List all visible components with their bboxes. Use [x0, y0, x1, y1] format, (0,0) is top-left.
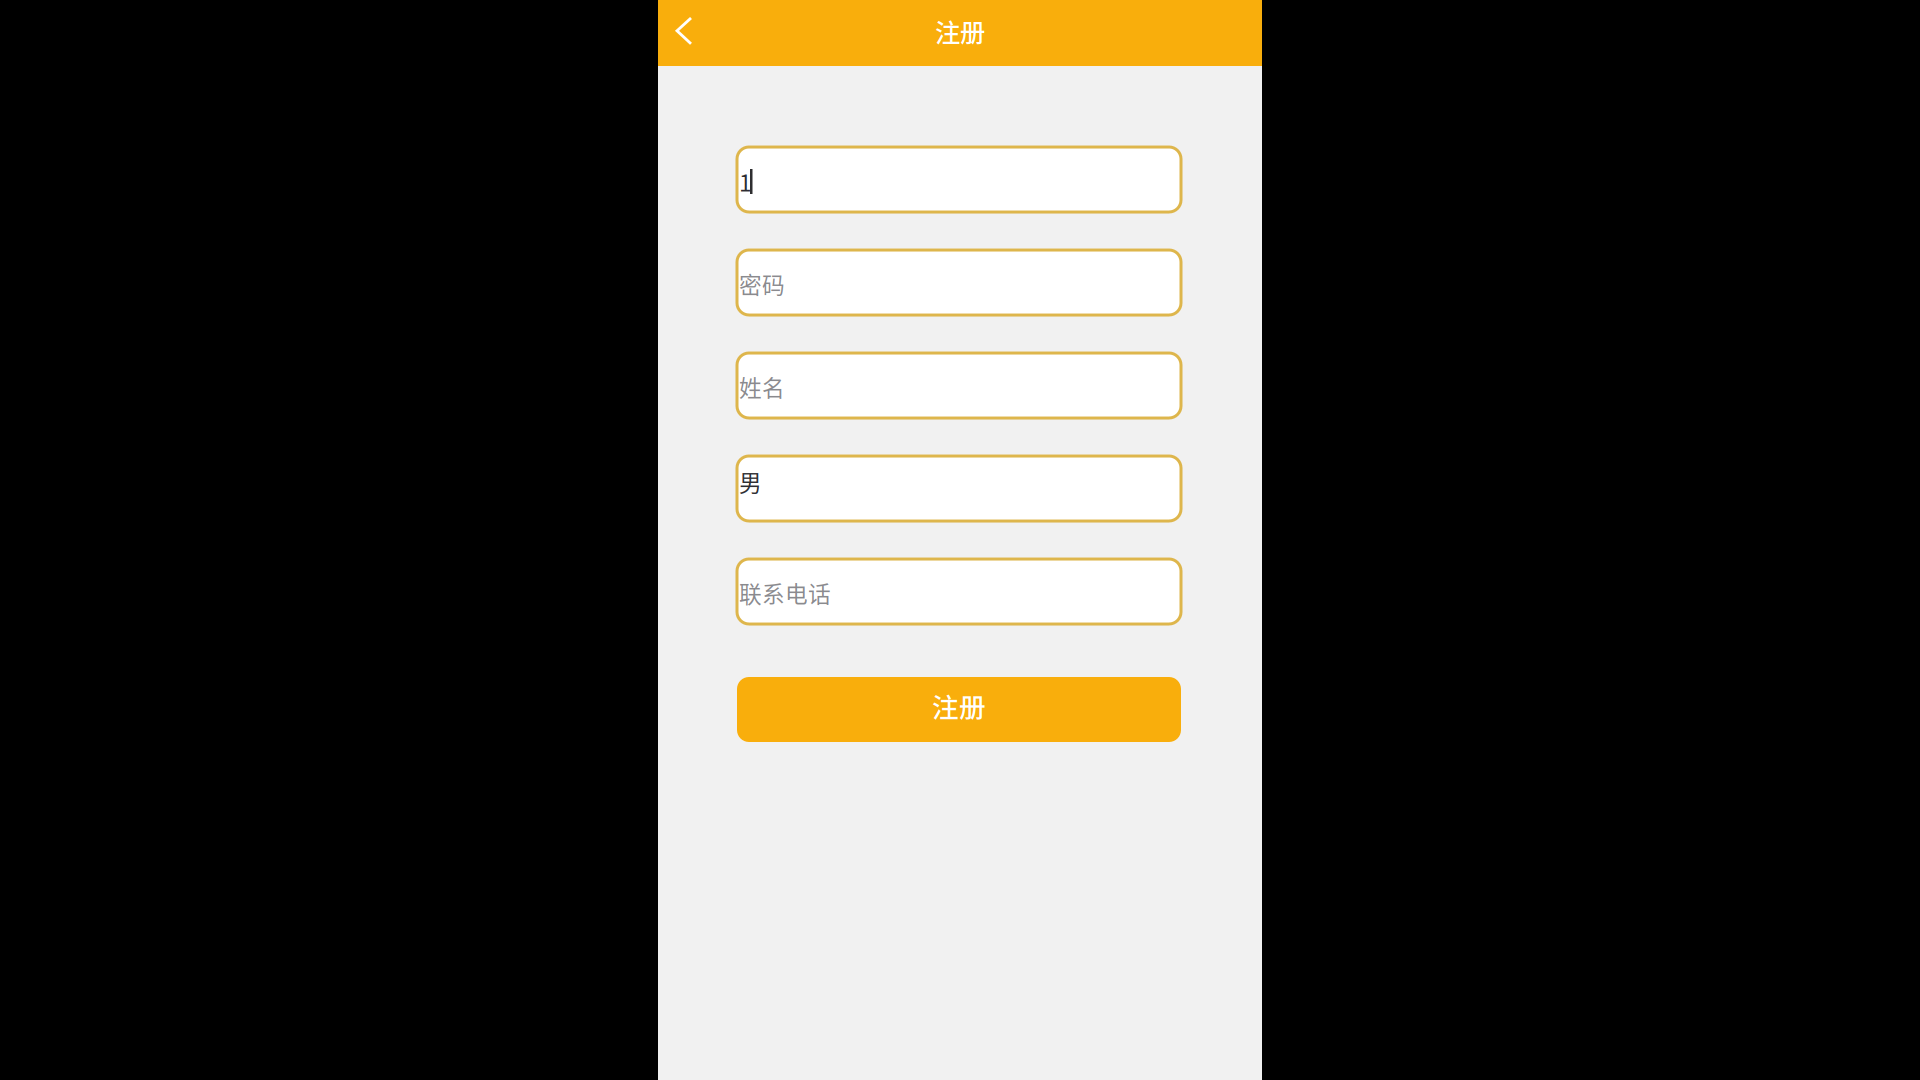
- staticText: 注册: [935, 13, 985, 49]
- staticText: 姓名: [739, 370, 785, 403]
- button[interactable]: 1: [737, 147, 1181, 212]
- button[interactable]: 姓名: [737, 353, 1181, 418]
- button[interactable]: 注册: [737, 677, 1181, 742]
- staticText: 密码: [739, 267, 785, 300]
- button[interactable]: 密码: [737, 250, 1181, 315]
- staticText: 联系电话: [739, 576, 831, 609]
- button[interactable]: Back: [664, 6, 704, 60]
- staticText: 男: [739, 465, 762, 498]
- button[interactable]: 联系电话: [737, 559, 1181, 624]
- button[interactable]: 男: [737, 456, 1181, 521]
- staticText: 1: [739, 165, 752, 198]
- staticText: 注册: [932, 686, 986, 725]
